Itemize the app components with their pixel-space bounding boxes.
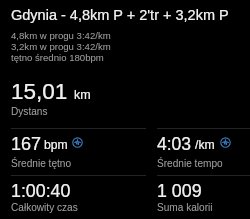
staticText: Całkowity czas	[11, 202, 78, 213]
staticText: 3,2km w progu 3:42/km	[11, 41, 111, 52]
other: Heart rate zone info	[220, 137, 231, 148]
staticText: 4:03	[157, 134, 192, 154]
staticText: 4,8km w progu 3:42/km	[11, 30, 111, 41]
staticText: 1 009	[157, 181, 202, 201]
staticText: Średnie tętno	[11, 158, 72, 169]
staticText: bpm	[44, 138, 68, 152]
staticText: Suma kalorii	[157, 202, 213, 213]
staticText: tętno średnio 180bpm	[11, 52, 104, 63]
staticText: 167	[11, 134, 42, 154]
staticText: 1:00:40	[11, 181, 71, 201]
staticText: Dystans	[11, 106, 48, 117]
staticText: Gdynia - 4,8km P + 2'tr + 3,2km P	[11, 7, 229, 23]
staticText: /km	[195, 138, 215, 152]
other: Heart rate zone info	[72, 137, 83, 148]
staticText: Średnie tempo	[157, 158, 223, 169]
staticText: km	[74, 88, 91, 102]
staticText: 15,01	[11, 79, 68, 104]
